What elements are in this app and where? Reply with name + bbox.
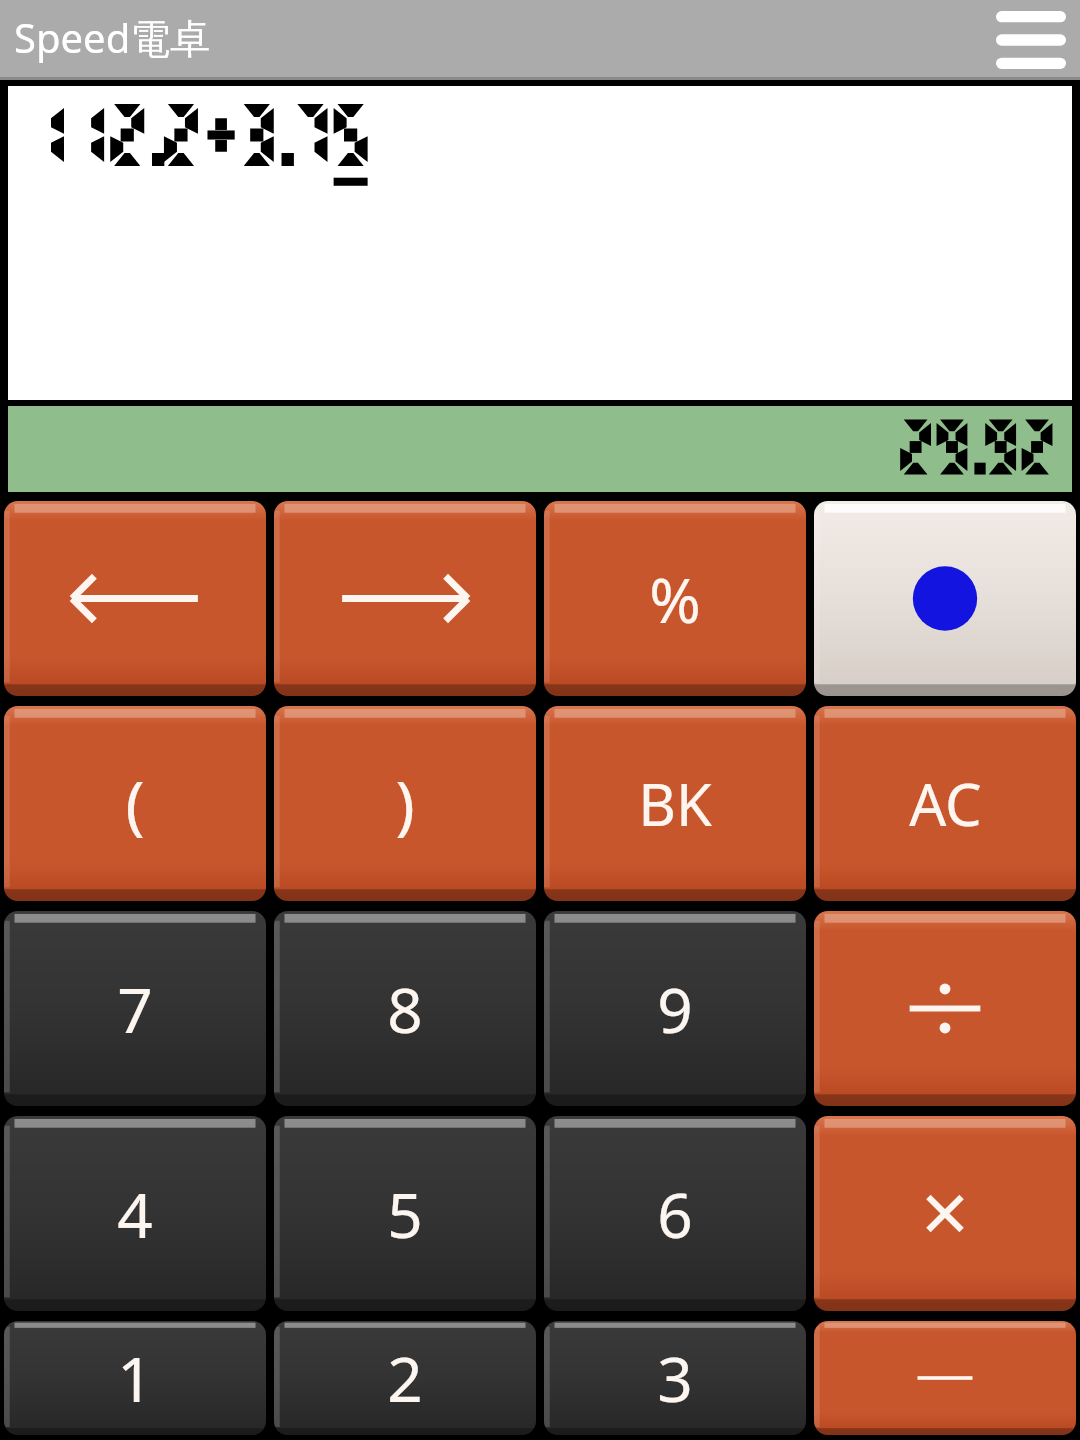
button[interactable]: Divide bbox=[814, 911, 1076, 1106]
button[interactable]: Move cursor right bbox=[274, 501, 536, 696]
staticText: 6 bbox=[657, 1172, 693, 1256]
button[interactable]: Menu bbox=[996, 11, 1066, 69]
staticText: 2 bbox=[387, 1336, 423, 1420]
staticText: ( bbox=[125, 760, 145, 847]
button[interactable]: % bbox=[544, 501, 806, 696]
button[interactable]: 2 bbox=[274, 1321, 536, 1435]
button[interactable]: ( bbox=[4, 706, 266, 901]
button[interactable]: 3 bbox=[544, 1321, 806, 1435]
button[interactable] bbox=[8, 406, 1072, 492]
button[interactable]: Subtract bbox=[814, 1321, 1076, 1435]
button[interactable]: 6 bbox=[544, 1116, 806, 1311]
button[interactable]: BK bbox=[544, 706, 806, 901]
staticText: BK bbox=[638, 764, 712, 843]
button[interactable]: Move cursor left bbox=[4, 501, 266, 696]
button[interactable]: AC bbox=[814, 706, 1076, 901]
button[interactable]: 4 bbox=[4, 1116, 266, 1311]
staticText: 7 bbox=[117, 967, 153, 1051]
button[interactable]: 8 bbox=[274, 911, 536, 1106]
button[interactable]: 7 bbox=[4, 911, 266, 1106]
staticText: 9 bbox=[657, 967, 693, 1051]
button[interactable] bbox=[8, 86, 1072, 400]
staticText: 8 bbox=[387, 967, 423, 1051]
staticText: 3 bbox=[657, 1336, 693, 1420]
staticText: 5 bbox=[387, 1172, 423, 1256]
staticText: ) bbox=[395, 760, 415, 847]
staticText: 4 bbox=[117, 1172, 153, 1256]
button[interactable]: 1 bbox=[4, 1321, 266, 1435]
staticText: Speed電卓 bbox=[14, 10, 211, 65]
staticText: 1 bbox=[117, 1336, 153, 1420]
button[interactable]: Multiply bbox=[814, 1116, 1076, 1311]
button[interactable]: Equals bbox=[814, 501, 1076, 696]
staticText: % bbox=[649, 557, 701, 641]
staticText: AC bbox=[909, 764, 982, 843]
button[interactable]: ) bbox=[274, 706, 536, 901]
button[interactable]: 9 bbox=[544, 911, 806, 1106]
button[interactable]: 5 bbox=[274, 1116, 536, 1311]
